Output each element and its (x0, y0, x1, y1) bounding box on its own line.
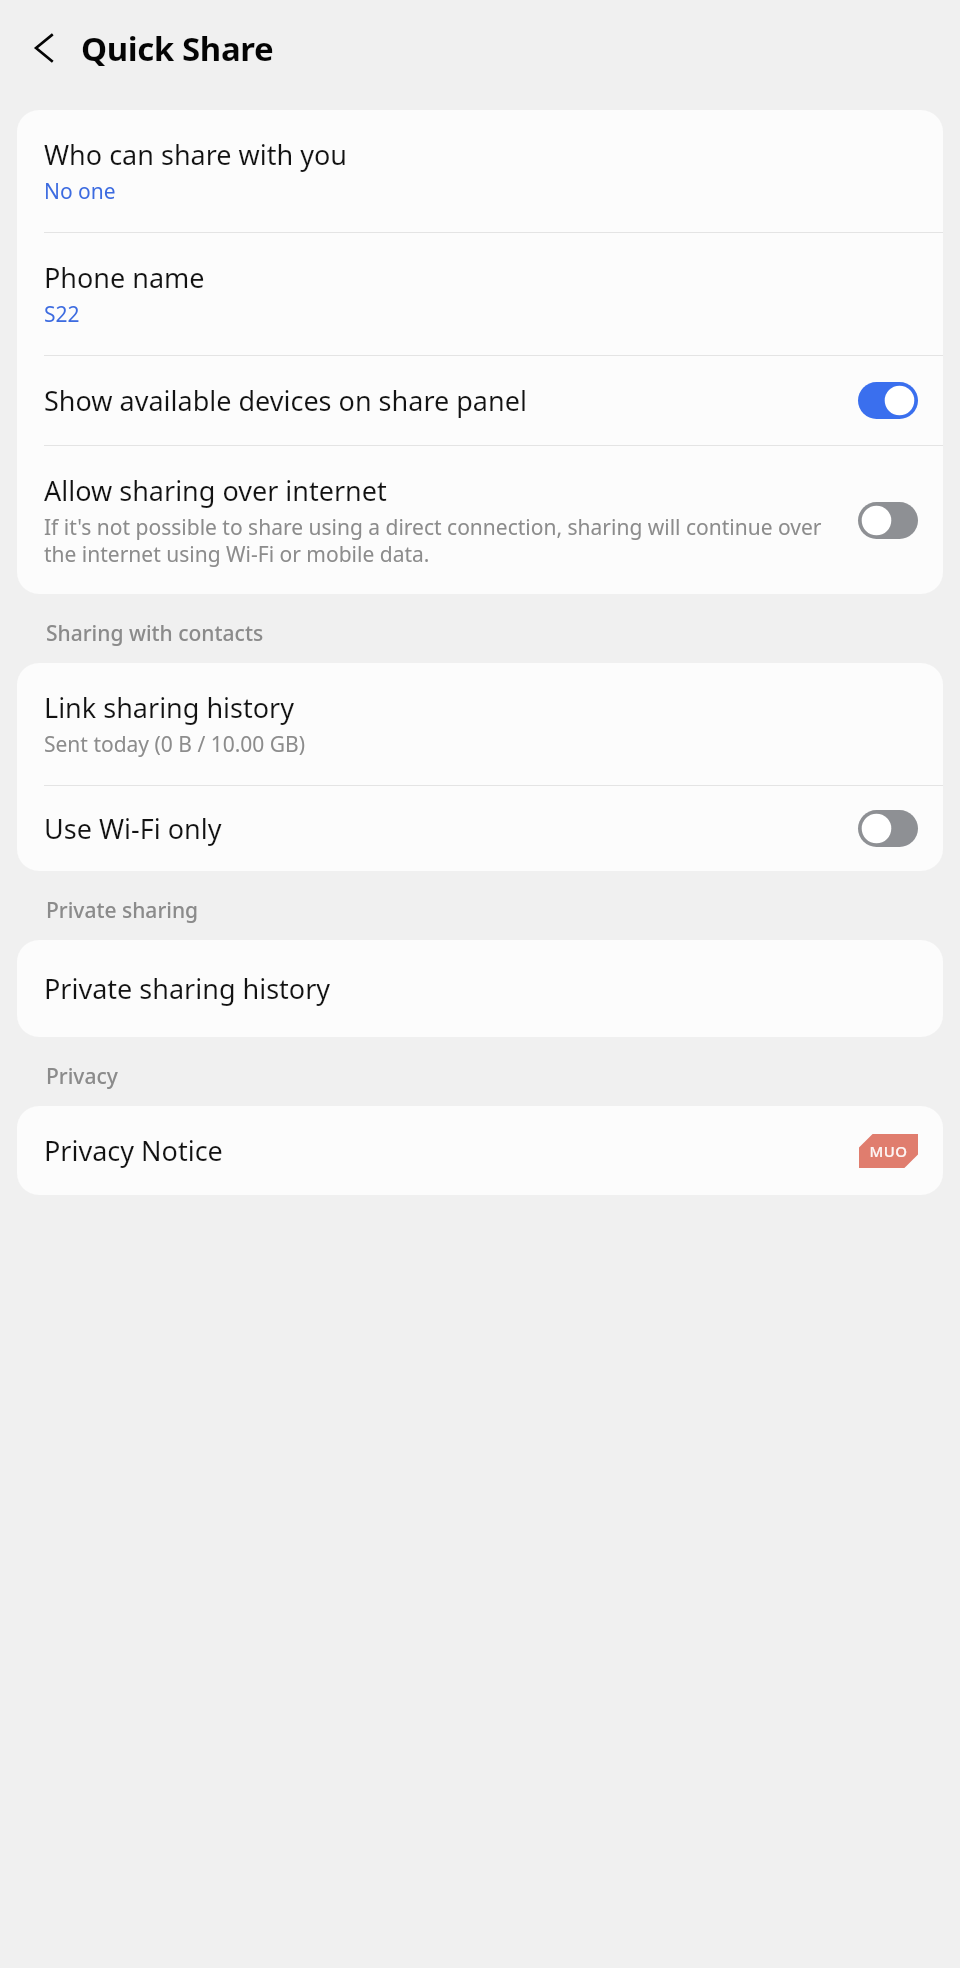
button[interactable]: Switch off (858, 502, 918, 539)
staticText: Allow sharing over internet (44, 472, 387, 509)
staticText: Privacy Notice (44, 1132, 223, 1169)
button[interactable]: Phone name (17, 233, 943, 355)
staticText: Use Wi-Fi only (44, 810, 222, 847)
button[interactable]: Privacy Notice (17, 1106, 943, 1195)
staticText: Phone name (44, 259, 205, 296)
button[interactable]: Link sharing history (17, 663, 943, 785)
staticText: Sent today (0 B / 10.00 GB) (44, 730, 306, 759)
button[interactable]: Back (17, 20, 73, 76)
staticText: Privacy (46, 1062, 118, 1091)
button[interactable]: Show available devices on share panel (17, 356, 943, 445)
button[interactable]: Allow sharing over internet (17, 446, 943, 594)
staticText: Private sharing (46, 896, 199, 925)
staticText: S22 (44, 300, 80, 329)
staticText: No one (44, 177, 116, 206)
button[interactable]: Use Wi-Fi only (17, 786, 943, 871)
staticText: Sharing with contacts (46, 619, 264, 648)
staticText: Quick Share (81, 26, 274, 71)
staticText: MUO (869, 1141, 908, 1161)
staticText: Who can share with you (44, 136, 348, 173)
staticText: Private sharing history (44, 970, 331, 1007)
staticText: Link sharing history (44, 689, 295, 726)
button[interactable]: Switch on (858, 382, 918, 419)
button[interactable]: Private sharing history (17, 940, 943, 1037)
staticText: If it's not possible to share using a di… (44, 513, 844, 568)
button[interactable]: Who can share with you (17, 110, 943, 232)
button[interactable]: Switch off (858, 810, 918, 847)
staticText: Show available devices on share panel (44, 382, 527, 419)
